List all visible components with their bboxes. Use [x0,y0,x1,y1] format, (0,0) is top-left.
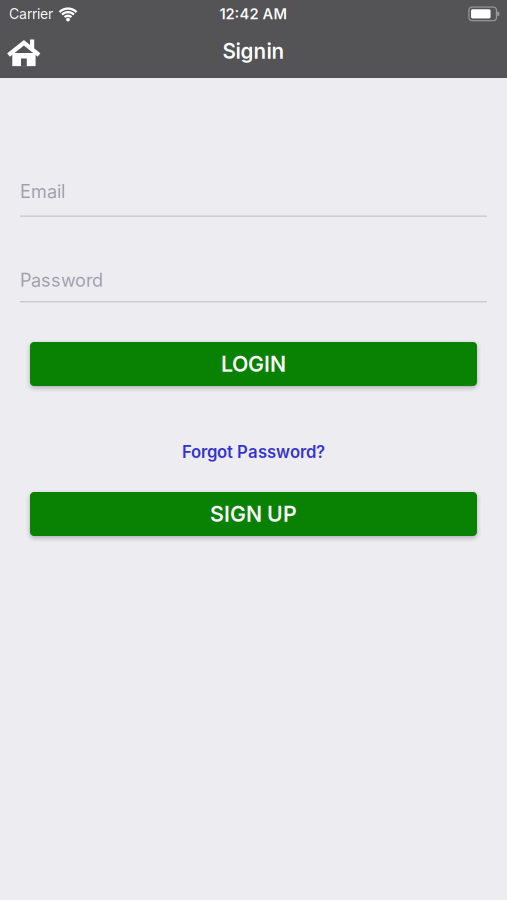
button[interactable]: LOGIN [30,342,477,386]
button[interactable]: Forgot Password? [182,442,325,462]
staticText: LOGIN [221,351,286,377]
staticText: Email [20,181,65,202]
button[interactable]: SIGN UP [30,492,477,536]
button[interactable]: Email [0,181,507,217]
button[interactable] [0,24,46,78]
staticText: Password [20,269,103,291]
staticText: SIGN UP [210,501,297,527]
staticText: Carrier [9,5,53,22]
staticText: 12:42 AM [219,5,287,23]
staticText: Forgot Password? [182,442,325,462]
button[interactable]: Password [0,270,507,302]
staticText: Signin [222,39,284,64]
